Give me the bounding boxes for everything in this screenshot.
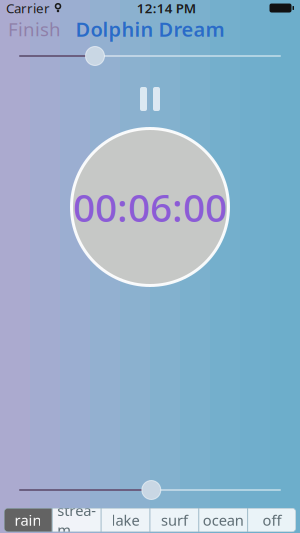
staticText: off [263, 510, 282, 530]
staticText: Dolphin Dream [75, 16, 224, 42]
staticText: surf [161, 510, 188, 530]
button[interactable]: lake [102, 508, 149, 532]
button[interactable]: rain [4, 508, 52, 532]
button[interactable]: surf [150, 508, 198, 532]
button[interactable]: Finish [0, 13, 69, 45]
staticText: lake [112, 510, 140, 530]
button[interactable]: ocean [199, 508, 247, 532]
staticText: stream [57, 500, 96, 533]
button[interactable]: Pause [132, 79, 168, 119]
staticText: ocean [203, 510, 244, 530]
button[interactable]: off [248, 508, 296, 532]
button[interactable]: 00:06:00 [70, 127, 230, 287]
staticText: rain [14, 510, 41, 530]
staticText: 12:14 PM [137, 0, 196, 17]
staticText: 00:06:00 [73, 181, 227, 233]
staticText: Finish [8, 17, 61, 41]
staticText: Carrier [6, 0, 50, 17]
button[interactable]: stream [53, 508, 101, 532]
